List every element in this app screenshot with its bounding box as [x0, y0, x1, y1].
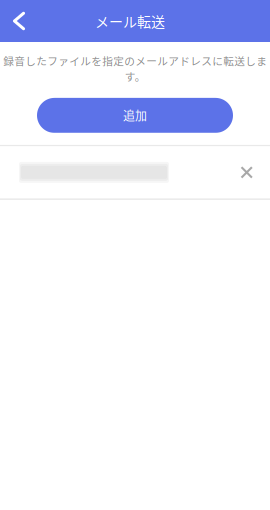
button[interactable]: Back — [6, 0, 32, 42]
staticText: 追加 — [123, 107, 147, 124]
staticText: 録音したファイルを指定のメールアドレスに転送します。 — [3, 53, 267, 84]
staticText: メール転送 — [95, 11, 165, 31]
button[interactable] — [0, 146, 270, 198]
button[interactable]: 追加 — [37, 98, 233, 133]
